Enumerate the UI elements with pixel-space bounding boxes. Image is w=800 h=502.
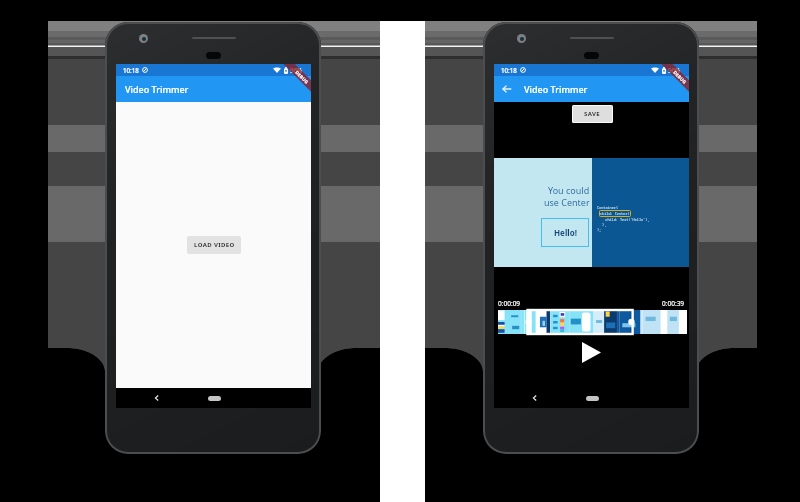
staticText: 0:00:09 — [498, 299, 521, 308]
button[interactable]: Home — [208, 396, 221, 401]
staticText: DEBUG — [294, 69, 310, 85]
button[interactable]: Play — [582, 342, 601, 363]
staticText: LOAD VIDEO — [194, 241, 235, 249]
button[interactable]: Back — [531, 394, 539, 402]
staticText: use Center — [544, 196, 590, 208]
staticText: child: Text('Hello'), — [599, 217, 650, 222]
staticText: child: Center( — [600, 211, 630, 216]
staticText: DEBUG — [672, 69, 688, 85]
button[interactable]: LOAD VIDEO — [187, 236, 241, 254]
staticText: Video Trimmer — [125, 83, 189, 95]
staticText: ), — [600, 222, 607, 227]
staticText: 96% — [668, 66, 681, 74]
button[interactable]: Back — [501, 83, 513, 95]
staticText: SAVE — [584, 110, 601, 118]
staticText: You could — [548, 184, 590, 196]
staticText: 10:18 — [501, 66, 517, 74]
staticText: 0:00:39 — [662, 299, 685, 308]
button[interactable]: SAVE — [573, 106, 612, 122]
staticText: 96% — [290, 66, 303, 74]
staticText: 10:18 — [123, 66, 139, 74]
button[interactable]: Back — [153, 394, 161, 402]
staticText: Video Trimmer — [524, 83, 588, 95]
staticText: ); — [597, 227, 602, 232]
button[interactable]: Home — [586, 396, 599, 401]
staticText: Hello! — [554, 227, 577, 238]
staticText: Container( — [597, 205, 618, 210]
